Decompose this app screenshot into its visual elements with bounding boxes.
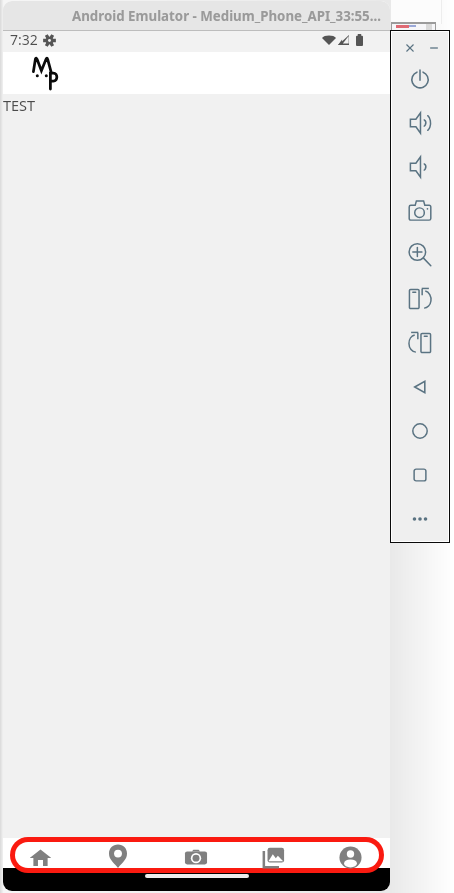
button[interactable]: Home <box>3 838 78 872</box>
button[interactable]: Overview <box>408 463 432 487</box>
button[interactable]: Home <box>408 419 432 443</box>
button[interactable]: Power <box>408 67 432 91</box>
button[interactable]: Places <box>80 838 156 872</box>
staticText: Android Emulator - Medium_Phone_API_33:5… <box>72 7 381 25</box>
button[interactable]: Camera <box>158 838 234 872</box>
button[interactable]: Screenshot <box>408 199 432 223</box>
button[interactable]: Volume up <box>408 111 432 135</box>
button[interactable]: Volume down <box>408 155 432 179</box>
staticText: 7:32 <box>10 30 38 49</box>
button[interactable]: Rotate right <box>408 331 432 355</box>
button[interactable]: Back <box>408 375 432 399</box>
button[interactable]: More <box>408 507 432 531</box>
button[interactable]: Zoom <box>408 243 432 267</box>
button[interactable]: Gallery <box>235 838 311 872</box>
button[interactable]: Rotate left <box>408 287 432 311</box>
button[interactable]: Minimize <box>426 40 442 56</box>
button[interactable]: Account <box>312 838 388 872</box>
staticText: TEST <box>3 95 36 115</box>
button[interactable]: Close <box>402 40 418 56</box>
